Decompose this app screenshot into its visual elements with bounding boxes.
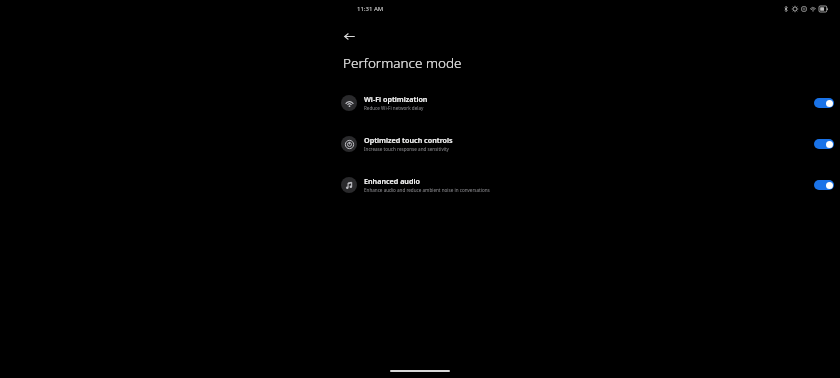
button[interactable]: Optimized touch controls toggle [814, 139, 834, 149]
staticText: Wi-Fi optimization [364, 94, 428, 104]
button[interactable]: Wi-Fi optimization toggle [814, 98, 834, 108]
button[interactable]: Back [339, 26, 359, 46]
button[interactable]: Optimized touch controls [335, 133, 840, 154]
staticText: 11:31 AM [357, 5, 384, 13]
button[interactable]: Wi-Fi optimization [335, 92, 840, 113]
staticText: Increase touch response and sensitivity [364, 146, 449, 152]
staticText: Enhance audio and reduce ambient noise i… [364, 187, 490, 193]
staticText: Enhanced audio [364, 176, 420, 186]
button[interactable]: Enhanced audio [335, 174, 840, 195]
staticText: Performance mode [343, 54, 462, 72]
staticText: Optimized touch controls [364, 135, 453, 145]
staticText: Reduce Wi-Fi network delay [364, 105, 424, 111]
button[interactable]: Enhanced audio toggle [814, 180, 834, 190]
